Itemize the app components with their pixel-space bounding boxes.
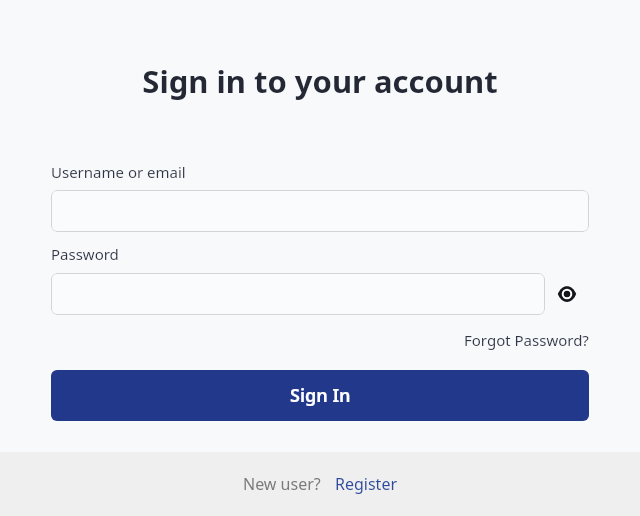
staticText: Forgot Password? — [464, 330, 589, 350]
button[interactable]: Password input — [51, 273, 545, 315]
staticText: New user? — [243, 473, 321, 495]
staticText: Sign in to your account — [142, 60, 498, 102]
button[interactable]: Username or email input — [51, 190, 589, 232]
button[interactable]: Forgot Password? — [464, 330, 589, 350]
staticText: Username or email — [51, 162, 186, 182]
button[interactable]: Show password — [545, 272, 589, 316]
staticText: Register — [335, 473, 398, 495]
button[interactable]: Register — [335, 473, 398, 495]
button[interactable]: Sign In — [51, 370, 589, 421]
staticText: Password — [51, 244, 119, 264]
staticText: Sign In — [290, 383, 351, 408]
